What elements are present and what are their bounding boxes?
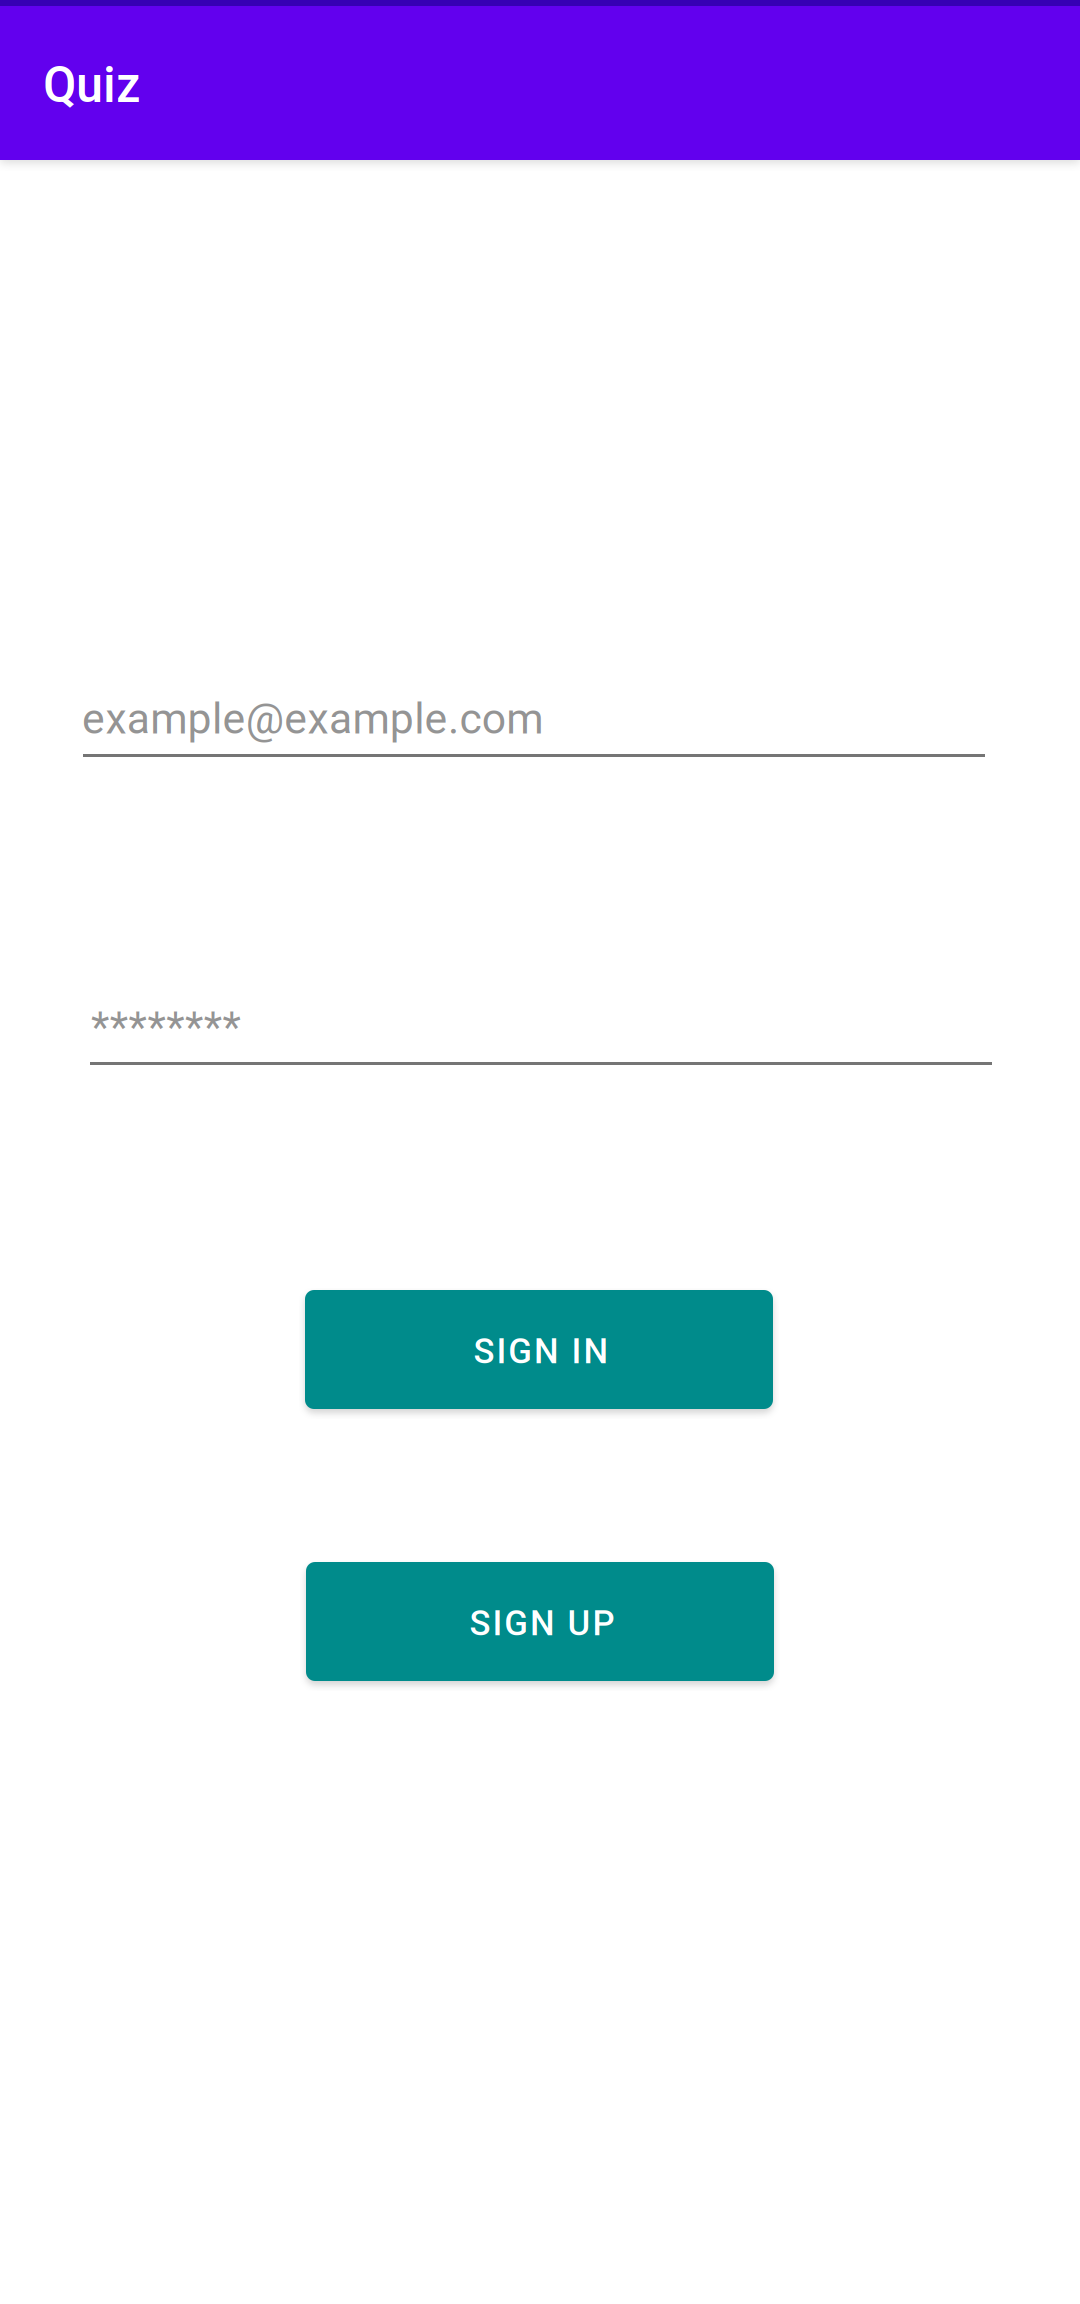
button[interactable]: Password: [90, 995, 992, 1105]
staticText: SIGN UP: [470, 1603, 614, 1644]
button[interactable]: Email address: [83, 687, 985, 797]
staticText: Quiz: [43, 55, 141, 114]
staticText: example@example.com: [82, 694, 543, 744]
button[interactable]: SIGN UP: [306, 1562, 774, 1681]
staticText: SIGN IN: [474, 1331, 608, 1372]
staticText: ********: [91, 1002, 241, 1052]
button[interactable]: SIGN IN: [305, 1290, 773, 1409]
